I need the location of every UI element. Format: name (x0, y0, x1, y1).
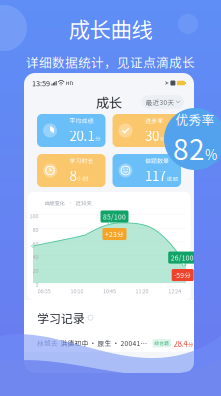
staticText: 做题数量 (145, 156, 169, 165)
staticText: 综合题 (154, 340, 169, 347)
staticText: +23分 (105, 229, 124, 239)
staticText: 10:45 (103, 287, 116, 295)
button[interactable]: 平均成绩 (37, 114, 105, 147)
staticText: 道题 (166, 174, 178, 182)
staticText: 分 (95, 134, 101, 142)
staticText: 进步率 (145, 116, 163, 125)
staticText: 优秀率 (175, 110, 214, 128)
staticText: 80 (32, 226, 38, 233)
staticText: 20 (32, 267, 38, 274)
button[interactable]: 做题数量 (112, 154, 181, 187)
staticText: 平均成绩 (69, 116, 93, 125)
staticText: -59分 (174, 270, 191, 280)
staticText: % (159, 134, 164, 142)
staticText: 85/100 (103, 212, 126, 221)
staticText: 20.1 (69, 125, 94, 145)
button[interactable]: 林城去 (24, 334, 194, 352)
staticText: 28.4 (174, 337, 188, 349)
staticText: · (67, 199, 72, 207)
staticText: 11:20 (136, 287, 149, 295)
staticText: 82 (173, 127, 205, 168)
staticText: 详细数据统计，见证点滴成长 (26, 53, 195, 71)
staticText: 0 (35, 280, 38, 288)
staticText: 最近30天 (145, 97, 174, 107)
staticText: 08:35 (38, 287, 51, 295)
staticText: 40 (32, 253, 38, 261)
staticText: 近30天 (75, 199, 91, 207)
staticText: 60 (32, 239, 38, 247)
staticText: 8 (69, 165, 76, 185)
staticText: % (205, 144, 217, 164)
staticText: 学习时长 (69, 156, 93, 165)
staticText: 学习记录 (37, 309, 85, 326)
staticText: 洪德初中 · 原生 · 20041… (60, 338, 147, 348)
staticText: 成长曲线 (68, 13, 152, 44)
button[interactable]: 最近30天 (141, 95, 184, 109)
staticText: 30 (145, 125, 159, 145)
staticText: 小时 (77, 174, 89, 182)
staticText: 10:10 (70, 287, 83, 295)
staticText: 26/100 (171, 253, 194, 262)
staticText: 成长 (96, 92, 122, 112)
staticText: 林城去 (37, 338, 58, 348)
button[interactable]: 进步率 (112, 114, 181, 147)
staticText: HD (66, 79, 74, 87)
button[interactable]: 学习时长 (37, 154, 105, 187)
staticText: 成绩变化 (44, 199, 64, 207)
staticText: 12:24 (168, 287, 181, 295)
staticText: 117 (145, 165, 166, 185)
staticText: 13:59 (32, 78, 50, 88)
staticText: 分 (188, 340, 193, 348)
staticText: 100 (29, 212, 38, 220)
